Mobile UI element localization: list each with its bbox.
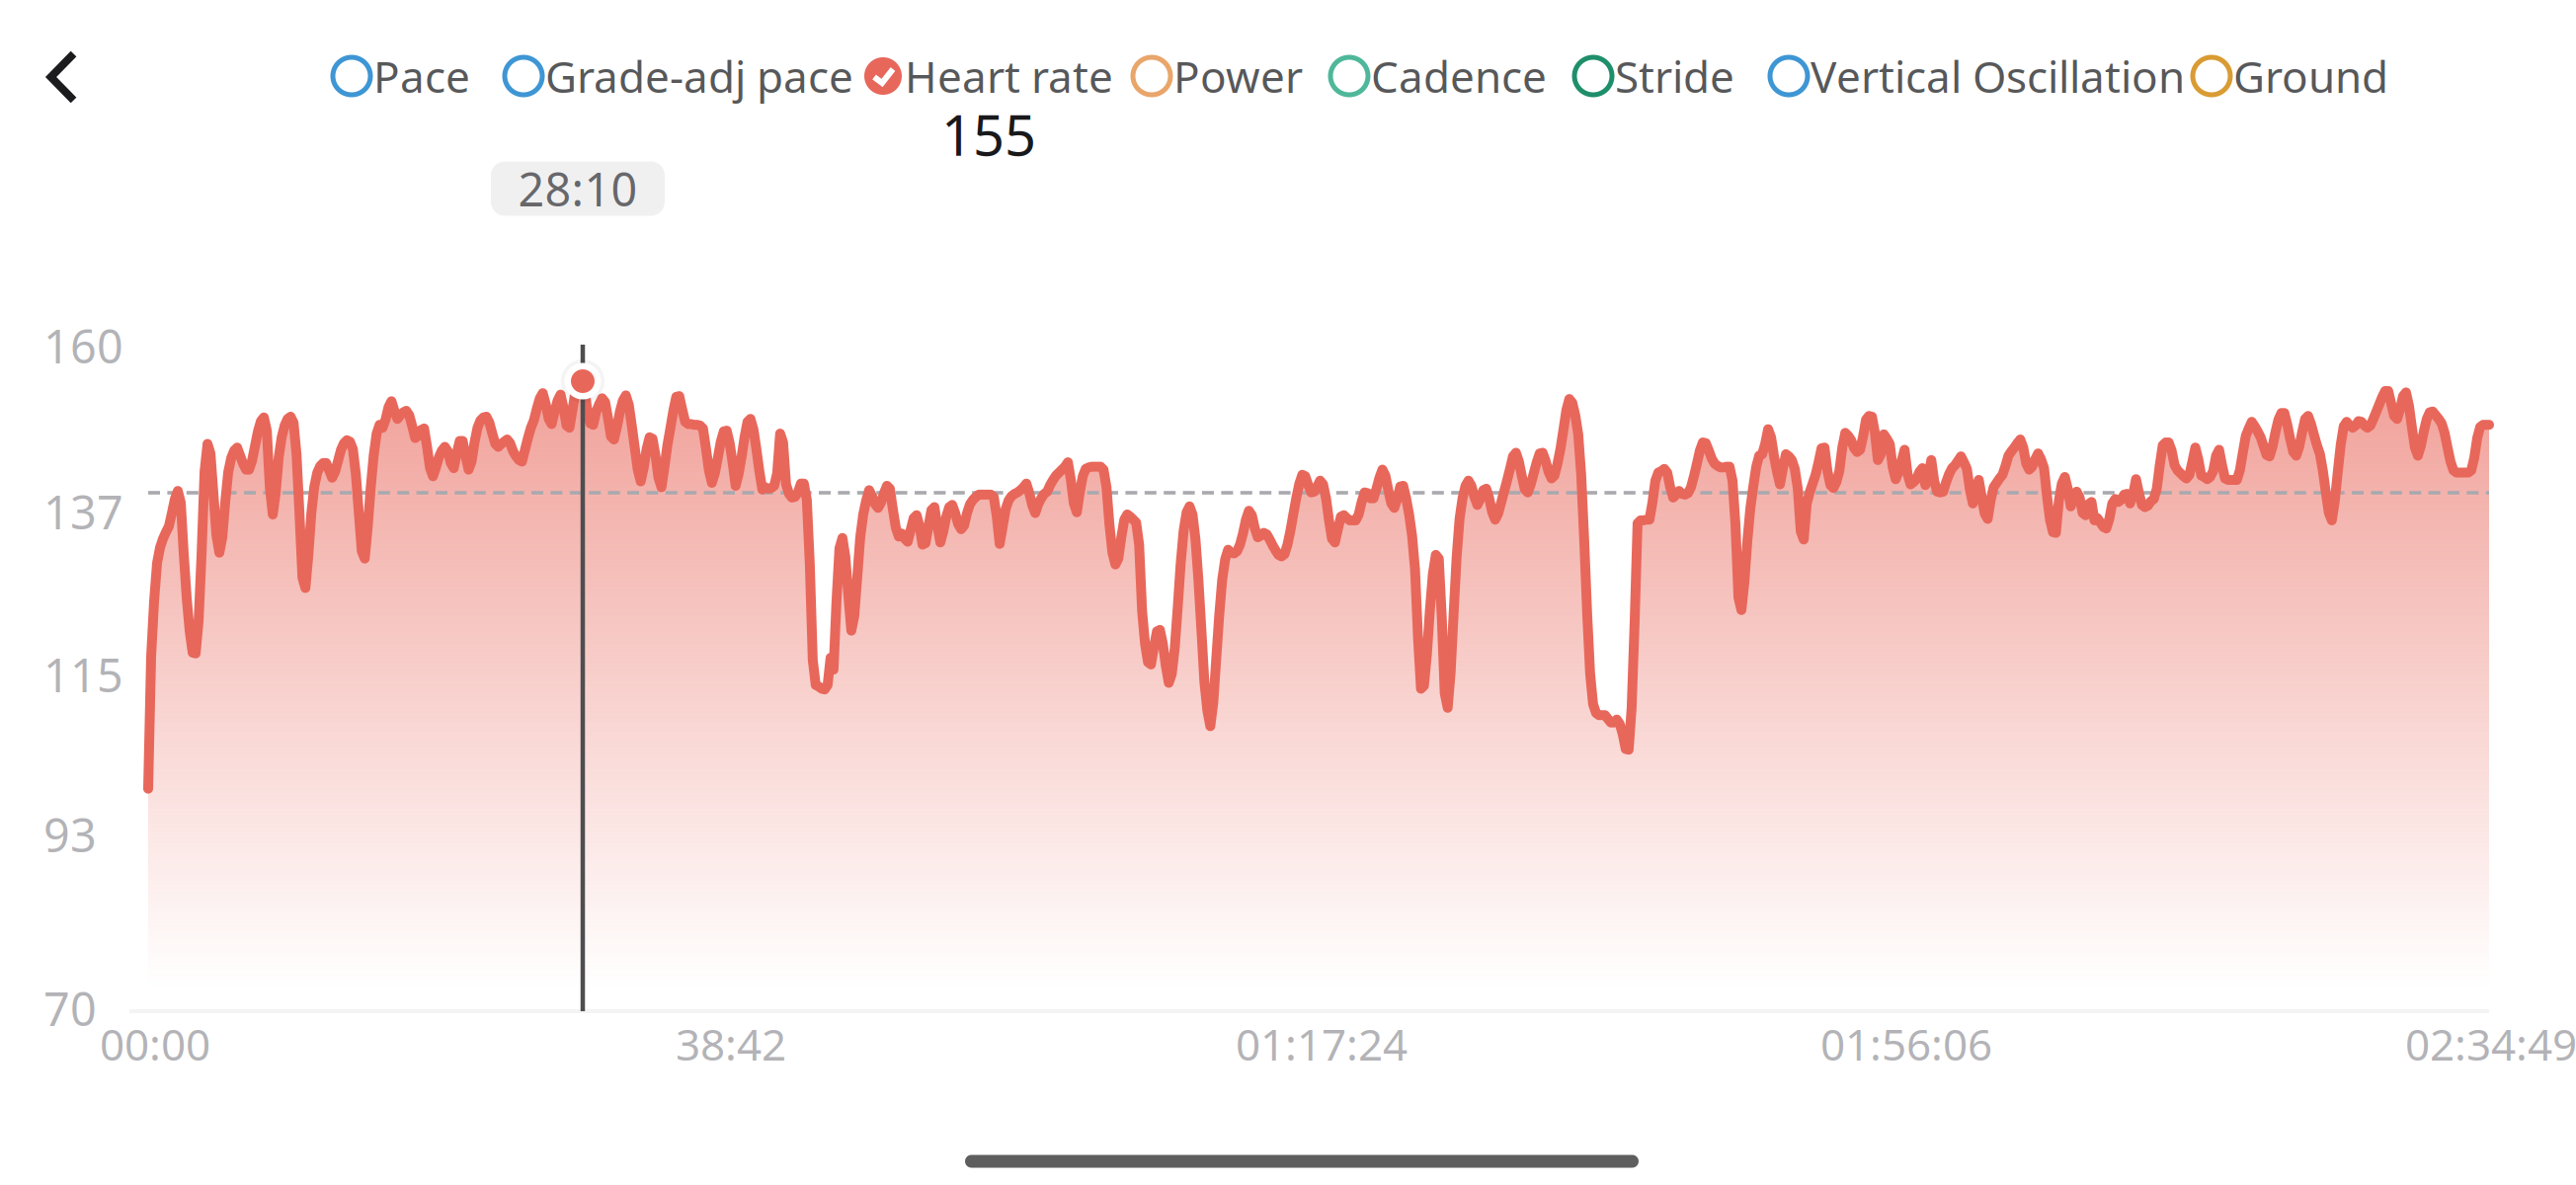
- button[interactable]: Stride: [1574, 47, 1734, 105]
- staticText: Ground: [2233, 47, 2388, 105]
- button[interactable]: Grade-adj pace: [505, 47, 853, 105]
- staticText: 137: [43, 481, 123, 542]
- staticText: 00:00: [100, 1015, 210, 1073]
- button[interactable]: Pace: [333, 47, 470, 105]
- staticText: 155: [941, 98, 1036, 171]
- button[interactable]: Ground: [2193, 47, 2388, 105]
- button[interactable]: Power: [1133, 47, 1303, 105]
- button[interactable]: Back: [19, 22, 105, 132]
- staticText: Heart rate: [905, 47, 1113, 105]
- button[interactable]: Vertical Oscillation: [1770, 47, 2185, 105]
- staticText: Pace: [373, 47, 470, 105]
- staticText: Power: [1173, 47, 1303, 105]
- staticText: Cadence: [1371, 47, 1547, 105]
- staticText: 93: [43, 804, 97, 865]
- staticText: 38:42: [676, 1015, 786, 1073]
- button[interactable]: Cadence: [1330, 47, 1547, 105]
- staticText: 02:34:49: [2405, 1015, 2576, 1073]
- staticText: 160: [43, 315, 123, 376]
- staticText: 01:56:06: [1820, 1015, 1992, 1073]
- staticText: Vertical Oscillation: [1811, 47, 2185, 105]
- staticText: 115: [43, 644, 123, 705]
- staticText: 70: [43, 978, 97, 1039]
- staticText: Grade-adj pace: [545, 47, 853, 105]
- staticText: 28:10: [518, 158, 638, 219]
- button[interactable]: Heart rate: [864, 47, 1113, 105]
- staticText: 01:17:24: [1236, 1015, 1408, 1073]
- staticText: Stride: [1615, 47, 1734, 105]
